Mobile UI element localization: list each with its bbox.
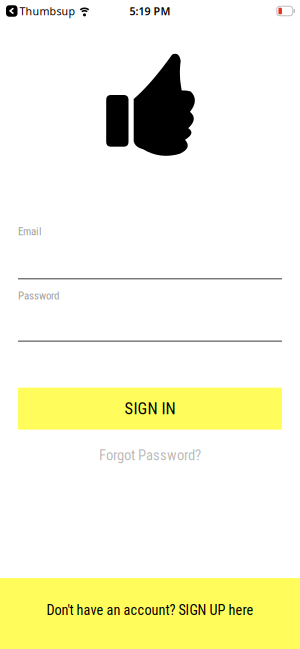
staticText: Forgot Password? xyxy=(99,447,201,464)
staticText: 5:19 PM xyxy=(129,4,170,18)
staticText: Thumbsup xyxy=(19,4,75,18)
staticText: Password xyxy=(18,289,59,302)
button[interactable]: SIGN IN xyxy=(18,388,282,430)
button[interactable]: Don't have an account? SIGN UP here xyxy=(0,578,300,649)
staticText: Don't have an account? SIGN UP here xyxy=(46,602,253,618)
staticText: SIGN IN xyxy=(124,399,175,418)
staticText: Email xyxy=(18,225,42,238)
button[interactable]: Forgot Password? xyxy=(99,447,201,464)
